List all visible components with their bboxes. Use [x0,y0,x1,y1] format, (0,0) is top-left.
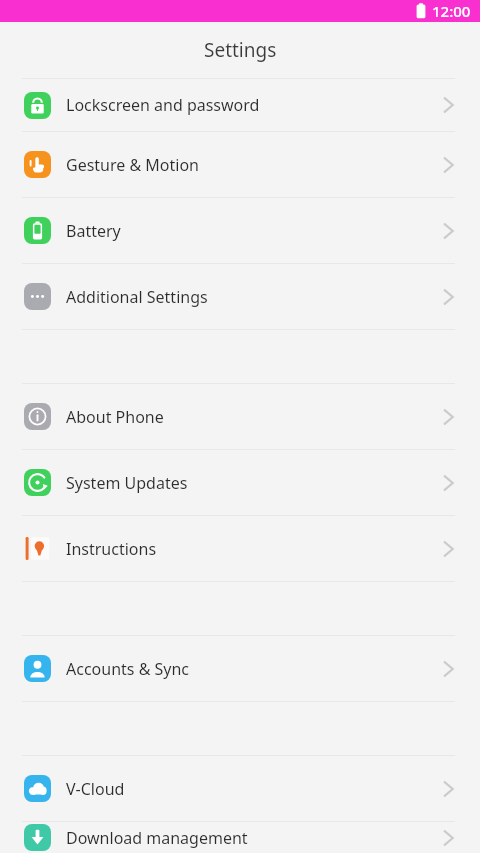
button[interactable]: Gesture & Motion [0,132,480,197]
staticText: About Phone [66,406,164,428]
staticText: V-Cloud [66,778,125,800]
staticText: Settings [204,37,277,63]
button[interactable]: Lockscreen and password [0,79,480,131]
staticText: Download management [66,827,248,849]
staticText: 12:00 [432,1,471,21]
button[interactable]: About Phone [0,384,480,449]
staticText: System Updates [66,472,188,494]
button[interactable]: Additional Settings [0,264,480,329]
staticText: Instructions [66,538,157,560]
staticText: Gesture & Motion [66,154,200,176]
button[interactable]: Battery [0,198,480,263]
button[interactable]: Download management [0,822,480,853]
staticText: Lockscreen and password [66,94,260,116]
staticText: Battery [66,220,121,242]
button[interactable]: System Updates [0,450,480,515]
staticText: Accounts & Sync [66,658,190,680]
button[interactable]: Accounts & Sync [0,636,480,701]
button[interactable]: V-Cloud [0,756,480,821]
button[interactable]: Instructions [0,516,480,581]
staticText: Additional Settings [66,286,208,308]
